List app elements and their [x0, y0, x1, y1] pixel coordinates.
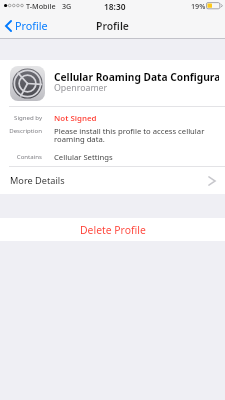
- staticText: T-Mobile: [26, 1, 56, 11]
- button[interactable]: Delete Profile: [0, 218, 225, 241]
- staticText: Not Signed: [54, 113, 97, 124]
- button[interactable]: Profile: [0, 15, 53, 36]
- staticText: Openroamer: [54, 82, 108, 94]
- staticText: Cellular Roaming Data Configura…: [54, 70, 219, 84]
- staticText: 18:30: [104, 1, 126, 12]
- staticText: Description: [9, 126, 42, 134]
- staticText: 3G: [62, 1, 72, 11]
- staticText: Cellular Settings: [54, 152, 113, 162]
- staticText: Signed by: [14, 113, 42, 121]
- staticText: Delete Profile: [80, 223, 146, 237]
- staticText: Contains: [16, 152, 42, 160]
- staticText: More Details: [10, 174, 65, 187]
- button[interactable]: More Details: [0, 167, 225, 194]
- staticText: Profile: [96, 19, 129, 33]
- staticText: 19%: [191, 1, 206, 11]
- staticText: Profile: [15, 18, 48, 33]
- button[interactable]: Cellular Roaming Data Configura…: [0, 60, 225, 106]
- staticText: Please install this profile to access ce…: [54, 126, 215, 145]
